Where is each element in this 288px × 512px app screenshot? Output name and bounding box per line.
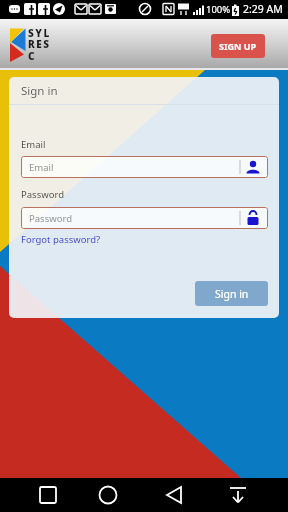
- staticText: Forgot password?: [21, 233, 101, 246]
- button[interactable]: [220, 479, 256, 511]
- button[interactable]: SIGN UP: [211, 34, 265, 58]
- staticText: Sign in: [21, 83, 58, 99]
- staticText: Password: [29, 212, 72, 225]
- button[interactable]: Password: [21, 207, 268, 229]
- button[interactable]: Email: [21, 156, 268, 178]
- staticText: 100%: [206, 3, 231, 16]
- button[interactable]: Forgot password?: [21, 233, 101, 246]
- staticText: Email: [21, 138, 46, 151]
- staticText: SYL RES C: [28, 26, 51, 63]
- staticText: Email: [29, 161, 54, 174]
- staticText: Password: [21, 188, 64, 201]
- button[interactable]: Sign in: [195, 281, 268, 306]
- button[interactable]: [30, 479, 66, 511]
- button[interactable]: [90, 479, 126, 511]
- staticText: SIGN UP: [219, 40, 257, 52]
- staticText: Sign in: [215, 287, 249, 301]
- button[interactable]: [156, 479, 192, 511]
- staticText: 2:29 AM: [243, 2, 283, 16]
